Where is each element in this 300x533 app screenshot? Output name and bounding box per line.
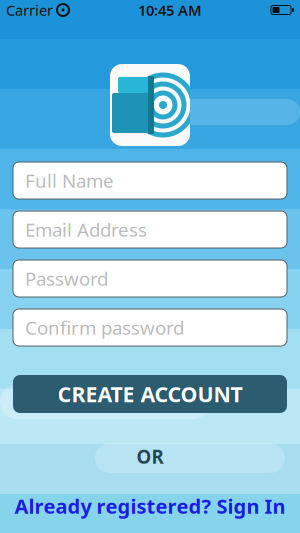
staticText: Password	[25, 266, 108, 291]
button[interactable]: CREATE ACCOUNT	[13, 375, 287, 413]
button[interactable]: Full Name	[13, 162, 287, 199]
button[interactable]: Email Address	[13, 211, 287, 248]
staticText: Full Name	[25, 168, 114, 193]
button[interactable]: Confirm password	[13, 309, 287, 346]
button[interactable]: Already registered? Sign In	[4, 489, 295, 523]
staticText: CREATE ACCOUNT	[57, 380, 242, 408]
staticText: Email Address	[25, 217, 147, 242]
staticText: 10:45 AM	[138, 0, 202, 20]
staticText: OR	[136, 444, 163, 469]
staticText: Already registered? Sign In	[14, 493, 285, 519]
staticText: Carrier	[6, 0, 53, 20]
button[interactable]: Password	[13, 260, 287, 297]
staticText: Confirm password	[25, 315, 184, 340]
